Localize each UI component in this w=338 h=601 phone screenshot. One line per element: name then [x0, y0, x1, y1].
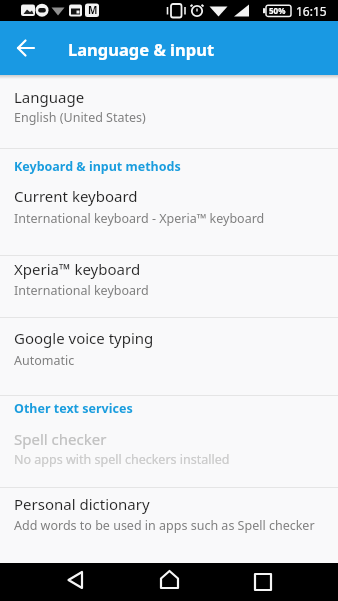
- staticText: 50%: [269, 5, 286, 16]
- staticText: Xperia™ keyboard: [14, 259, 141, 279]
- staticText: Automatic: [14, 352, 75, 369]
- button[interactable]: Google voice typing: [0, 317, 338, 395]
- staticText: No apps with spell checkers installed: [14, 451, 230, 468]
- button[interactable]: Current keyboard: [0, 185, 338, 255]
- staticText: Spell checker: [14, 429, 107, 449]
- button[interactable]: Personal dictionary: [0, 487, 338, 563]
- button[interactable]: Spell checker: [0, 425, 338, 487]
- staticText: Google voice typing: [14, 328, 154, 348]
- staticText: Current keyboard: [14, 186, 138, 206]
- button[interactable]: [147, 563, 191, 601]
- button[interactable]: [6, 28, 46, 68]
- staticText: Personal dictionary: [14, 494, 150, 514]
- button[interactable]: Xperia™ keyboard: [0, 255, 338, 317]
- staticText: Language: [14, 87, 85, 107]
- staticText: International keyboard: [14, 282, 149, 299]
- staticText: Add words to be used in apps such as Spe…: [14, 517, 315, 534]
- button[interactable]: Language: [0, 75, 338, 148]
- staticText: International keyboard - Xperia™ keyboar…: [14, 210, 265, 227]
- staticText: M: [88, 3, 98, 17]
- staticText: Language & input: [68, 38, 215, 60]
- staticText: English (United States): [14, 109, 146, 126]
- button[interactable]: [241, 563, 285, 601]
- staticText: Other text services: [14, 400, 133, 417]
- staticText: Keyboard & input methods: [14, 158, 181, 175]
- button[interactable]: [55, 563, 99, 601]
- staticText: 16:15: [296, 3, 327, 19]
